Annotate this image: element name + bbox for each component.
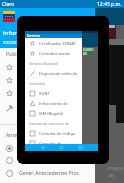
staticText: Servicio Nacional	[29, 61, 58, 66]
button[interactable]: Gaceta Oficial	[0, 61, 95, 73]
button[interactable]: Gaceta Municipal	[0, 74, 95, 86]
staticText: SIM (Bogotá)	[39, 111, 64, 116]
button[interactable]: Cedula de Identidad	[0, 142, 95, 154]
staticText: Camara de comercio de Bogotá	[29, 121, 82, 126]
staticText: 12:45 p.m.	[97, 1, 122, 8]
staticText: Publicaciones	[6, 51, 39, 58]
staticText: Gaceta Oficial	[19, 64, 52, 71]
staticText: mayo	[108, 164, 124, 172]
staticText: Gaceta Judicial	[19, 90, 54, 97]
staticText: Colombia	[29, 81, 46, 86]
other: Home	[60, 146, 63, 149]
button[interactable]: SIM (Bogotá)	[25, 108, 82, 118]
staticText: zo	[108, 171, 115, 179]
staticText: informacion	[3, 29, 38, 37]
button[interactable]: Pasaporte / RIF	[0, 154, 95, 166]
other: Back	[41, 146, 44, 149]
staticText: GUARDAR	[83, 48, 94, 55]
staticText: Leyes	[19, 105, 33, 112]
staticText: Gaceta Municipal	[19, 77, 60, 84]
staticText: xxxxxxxxx@xxx.com	[3, 39, 51, 46]
button[interactable]: Certificados SENIAT	[25, 38, 82, 48]
staticText: Disposición vehículo	[39, 71, 78, 76]
button[interactable]: Infracciones de tránsito	[25, 98, 82, 108]
other: Recents	[79, 146, 82, 149]
staticText: Consulta de código CIIU	[39, 131, 82, 136]
staticText: Cedula de Identidad	[19, 145, 67, 152]
button[interactable]: Leyes	[0, 102, 95, 114]
staticText: RUNT	[39, 91, 50, 96]
staticText: Certificados SENIAT	[39, 41, 76, 46]
button[interactable]: RUNT	[25, 88, 82, 98]
button[interactable]: Consulta de Nominación	[25, 138, 82, 148]
staticText: Gener. Antecedentes Proc.	[19, 170, 81, 177]
button[interactable]: Consultas varias SENIAT	[25, 48, 82, 58]
staticText: Consultas varias SENIAT	[39, 51, 82, 56]
staticText: Servicios	[27, 34, 41, 38]
button[interactable]: Gaceta Judicial	[0, 87, 95, 99]
button[interactable]: Disposición vehículo	[25, 68, 82, 78]
staticText: Pasaporte / RIF	[19, 157, 55, 164]
button[interactable]: Gener. Antecedentes Proc.	[0, 167, 95, 179]
staticText: Antecedentes	[6, 132, 39, 139]
staticText: Infracciones de tránsito	[39, 101, 82, 106]
staticText: Consulta de Nominación	[39, 141, 82, 146]
staticText: Claro	[2, 1, 15, 8]
button[interactable]: Consulta de código CIIU	[25, 128, 82, 138]
